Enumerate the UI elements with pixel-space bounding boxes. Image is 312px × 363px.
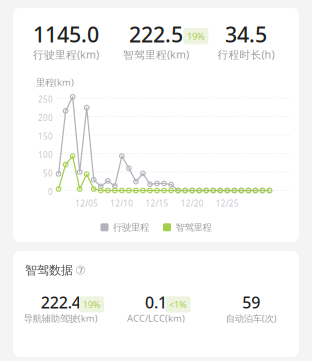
staticText: 19% bbox=[83, 298, 101, 311]
staticText: 智驾里程(km) bbox=[123, 47, 189, 61]
staticText: 0.1 bbox=[145, 292, 167, 313]
staticText: 50 bbox=[43, 168, 53, 179]
staticText: 0 bbox=[48, 186, 53, 197]
staticText: 1145.0 bbox=[33, 20, 99, 48]
staticText: 150 bbox=[38, 131, 53, 142]
staticText: 行驶里程 bbox=[113, 221, 149, 233]
staticText: 34.5 bbox=[225, 20, 267, 48]
staticText: 12/15 bbox=[145, 198, 168, 209]
staticText: 12/05 bbox=[75, 198, 98, 209]
staticText: 行驶里程(km) bbox=[33, 47, 99, 61]
staticText: 19% bbox=[187, 30, 205, 42]
staticText: 导航辅助驾驶(km) bbox=[24, 312, 98, 324]
staticText: 行程时长(h) bbox=[217, 47, 274, 61]
staticText: 智驾里程 bbox=[175, 221, 211, 233]
staticText: ⑦ bbox=[75, 264, 86, 277]
staticText: 12/25 bbox=[216, 198, 239, 209]
staticText: 自动泊车(次) bbox=[226, 312, 277, 324]
staticText: 100 bbox=[38, 149, 53, 160]
staticText: ACC/LCC(km) bbox=[127, 312, 185, 324]
staticText: 200 bbox=[38, 112, 53, 123]
staticText: 里程(km) bbox=[36, 76, 74, 88]
staticText: 智驾数据 bbox=[25, 263, 73, 278]
staticText: 222.5 bbox=[129, 20, 183, 48]
staticText: 222.4 bbox=[41, 292, 81, 313]
staticText: <1% bbox=[169, 298, 187, 311]
staticText: 59 bbox=[242, 292, 260, 313]
staticText: 12/20 bbox=[181, 198, 204, 209]
staticText: 250 bbox=[38, 94, 53, 105]
staticText: 12/10 bbox=[110, 198, 133, 209]
